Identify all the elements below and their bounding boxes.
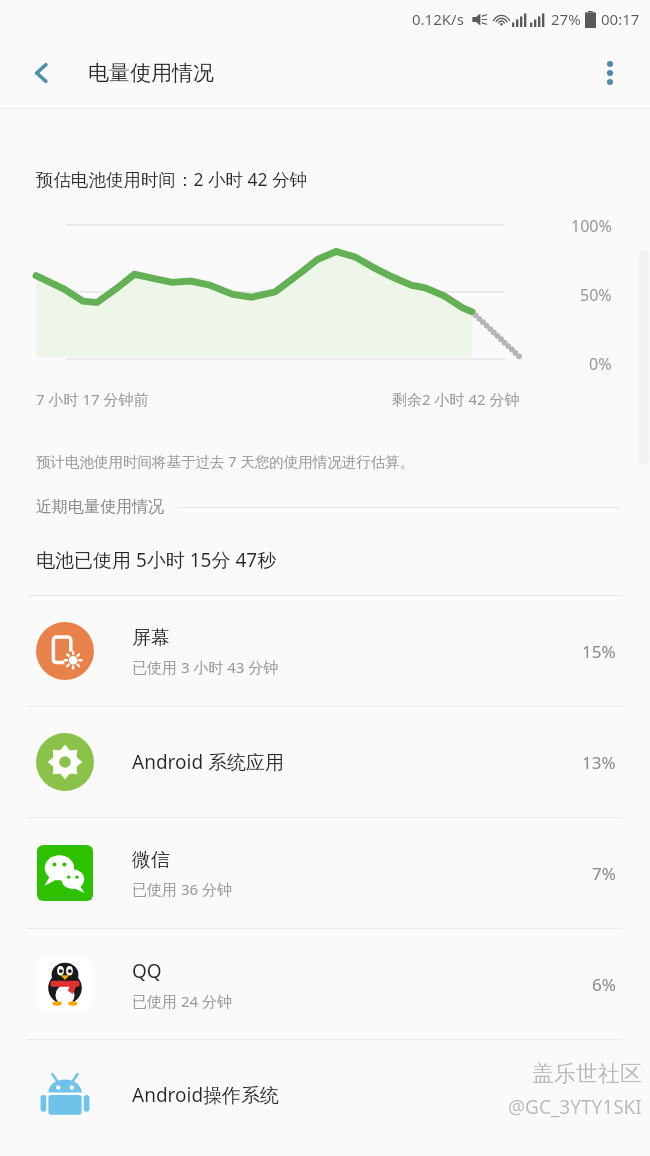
button[interactable]: Back: [16, 47, 68, 99]
staticText: 27%: [551, 9, 581, 29]
staticText: 剩余2 小时 42 分钟: [392, 389, 520, 409]
staticText: 6%: [592, 973, 616, 996]
staticText: 已使用 36 分钟: [132, 879, 232, 899]
staticText: 7%: [592, 862, 616, 885]
staticText: 盖乐世社区: [532, 1060, 642, 1088]
button[interactable]: More options: [584, 47, 636, 99]
button[interactable]: Android 系统应用: [0, 707, 650, 817]
button[interactable]: 屏幕: [0, 596, 650, 706]
staticText: 100%: [571, 215, 612, 237]
button[interactable]: QQ: [0, 929, 650, 1039]
staticText: 50%: [580, 284, 612, 306]
staticText: 近期电量使用情况: [36, 497, 164, 517]
staticText: 电池已使用 5小时 15分 47秒: [36, 547, 277, 573]
staticText: 已使用 24 分钟: [132, 991, 232, 1011]
staticText: @GC_3YTY1SKI: [508, 1094, 642, 1120]
staticText: 0%: [589, 353, 612, 375]
staticText: Android操作系统: [132, 1082, 280, 1108]
staticText: 微信: [132, 848, 170, 872]
staticText: 7 小时 17 分钟前: [36, 389, 149, 409]
staticText: 已使用 3 小时 43 分钟: [132, 657, 279, 677]
staticText: 预计电池使用时间将基于过去 7 天您的使用情况进行估算。: [36, 451, 415, 471]
button[interactable]: Android操作系统: [0, 1040, 650, 1150]
button[interactable]: 微信: [0, 818, 650, 928]
staticText: 0.12K/s: [412, 9, 464, 29]
staticText: 15%: [582, 640, 616, 663]
staticText: Android 系统应用: [132, 749, 285, 775]
staticText: QQ: [132, 958, 162, 984]
staticText: 预估电池使用时间：2 小时 42 分钟: [36, 167, 308, 191]
staticText: 13%: [582, 751, 616, 774]
staticText: 电量使用情况: [88, 60, 214, 86]
staticText: 00:17: [601, 9, 640, 29]
staticText: 屏幕: [132, 626, 170, 650]
